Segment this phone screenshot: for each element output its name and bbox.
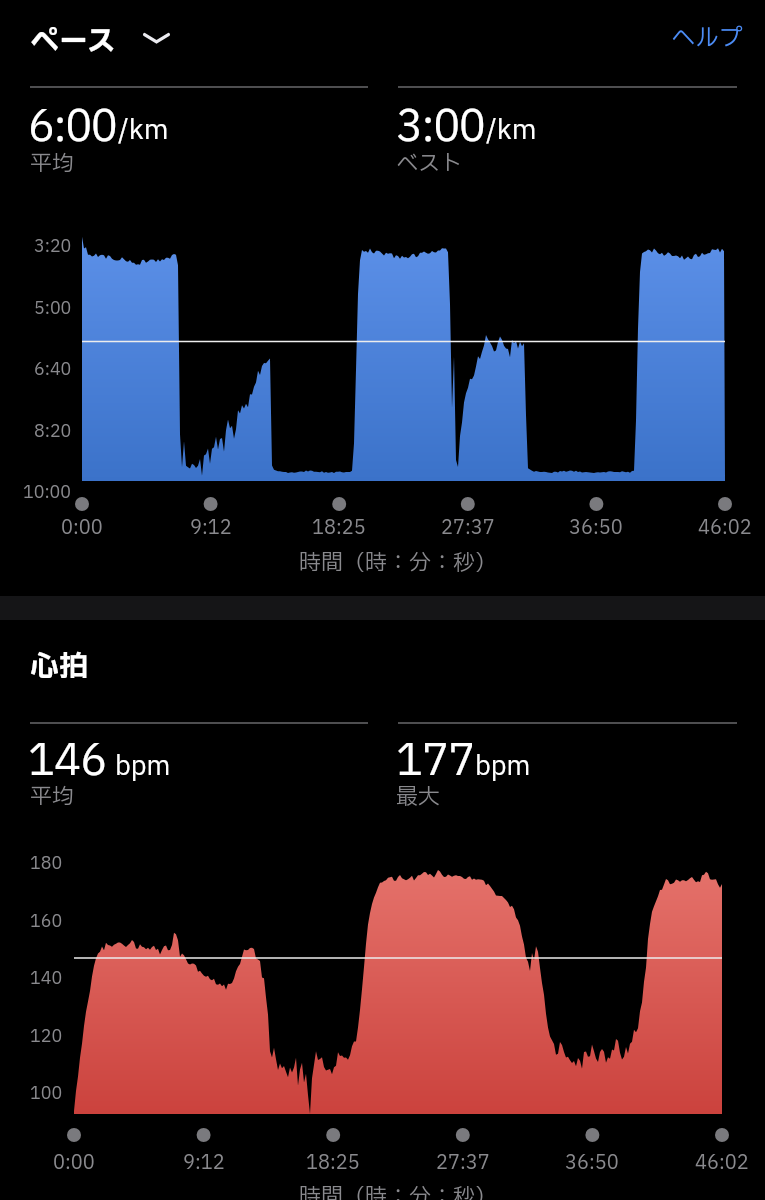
button[interactable] bbox=[660, 16, 752, 56]
staticText: 3:00 bbox=[396, 95, 485, 159]
staticText: 時間（時：分：秒） bbox=[299, 1181, 498, 1200]
staticText: 9:12 bbox=[190, 514, 232, 542]
staticText: ペース bbox=[30, 20, 116, 63]
staticText: 平均 bbox=[30, 781, 75, 814]
staticText: 最大 bbox=[396, 781, 441, 814]
staticText: 140 bbox=[30, 966, 63, 991]
staticText: 160 bbox=[30, 909, 63, 934]
staticText: 10:00 bbox=[23, 480, 72, 505]
staticText: 0:00 bbox=[61, 514, 103, 542]
staticText: 時間（時：分：秒） bbox=[299, 547, 498, 580]
staticText: ヘルプ bbox=[671, 21, 743, 57]
staticText: 36:50 bbox=[569, 514, 623, 542]
staticText: ベスト bbox=[396, 148, 463, 181]
staticText: 146 bbox=[28, 729, 107, 793]
staticText: 46:02 bbox=[695, 1149, 749, 1177]
staticText: bpm bbox=[475, 747, 531, 786]
staticText: 27:37 bbox=[436, 1149, 490, 1177]
staticText: bpm bbox=[115, 747, 171, 786]
staticText: 18:25 bbox=[306, 1149, 360, 1177]
staticText: 0:00 bbox=[53, 1149, 95, 1177]
staticText: /km bbox=[118, 110, 169, 150]
staticText: 27:37 bbox=[441, 514, 495, 542]
staticText: 36:50 bbox=[565, 1149, 619, 1177]
button[interactable] bbox=[22, 14, 182, 62]
staticText: 177 bbox=[396, 729, 475, 793]
staticText: 18:25 bbox=[312, 514, 366, 542]
staticText: 120 bbox=[30, 1024, 63, 1049]
staticText: 3:20 bbox=[34, 234, 72, 259]
staticText: 180 bbox=[30, 851, 63, 876]
staticText: 46:02 bbox=[698, 514, 752, 542]
staticText: 5:00 bbox=[34, 296, 72, 321]
staticText: 6:00 bbox=[28, 95, 117, 159]
staticText: 6:40 bbox=[34, 357, 72, 382]
staticText: 平均 bbox=[30, 148, 75, 181]
staticText: 100 bbox=[30, 1081, 63, 1106]
staticText: 9:12 bbox=[183, 1149, 225, 1177]
staticText: 心拍 bbox=[30, 645, 89, 688]
staticText: 8:20 bbox=[34, 419, 72, 444]
staticText: /km bbox=[486, 110, 537, 150]
